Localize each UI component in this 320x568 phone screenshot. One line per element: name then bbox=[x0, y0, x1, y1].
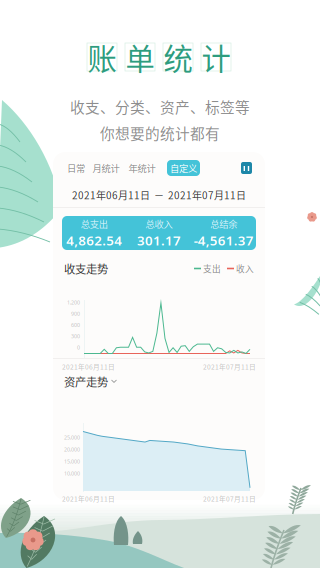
staticText: 年统计 bbox=[128, 161, 155, 175]
staticText: 0 bbox=[77, 344, 80, 351]
staticText: 2021年06月11日 bbox=[62, 494, 115, 503]
staticText: 账 bbox=[87, 36, 116, 78]
staticText: 4,862.54 bbox=[66, 231, 122, 249]
staticText: 计 bbox=[201, 36, 230, 78]
button[interactable]: 自定义 bbox=[167, 160, 200, 176]
staticText: 2021年06月11日 bbox=[62, 362, 115, 371]
staticText: 2021年07月11日 bbox=[203, 494, 256, 503]
staticText: 单 bbox=[125, 36, 154, 78]
staticText: 15,000 bbox=[64, 458, 80, 465]
staticText: 收入 bbox=[236, 262, 254, 275]
button[interactable]: 日常 bbox=[65, 162, 87, 174]
button[interactable]: Calendar bbox=[241, 162, 252, 174]
staticText: 总支出 bbox=[81, 217, 108, 230]
staticText: 月统计 bbox=[92, 161, 119, 175]
staticText: 你想要的统计都有 bbox=[100, 122, 220, 143]
staticText: 日常 bbox=[67, 161, 85, 175]
staticText: 统 bbox=[163, 36, 192, 78]
staticText: 支出 bbox=[203, 262, 221, 275]
staticText: 10,000 bbox=[64, 470, 80, 477]
staticText: 1,200 bbox=[67, 299, 80, 306]
staticText: 2021年07月11日 bbox=[203, 362, 256, 371]
staticText: 301.17 bbox=[137, 231, 181, 249]
staticText: 收支、分类、资产、标签等 bbox=[70, 96, 250, 117]
staticText: 25,000 bbox=[64, 434, 80, 441]
staticText: 20,000 bbox=[64, 446, 80, 453]
staticText: 总结余 bbox=[210, 217, 237, 230]
staticText: 2021年06月11日 － 2021年07月11日 bbox=[72, 188, 246, 202]
staticText: 总收入 bbox=[145, 217, 172, 230]
button[interactable]: 年统计 bbox=[131, 162, 153, 174]
staticText: 600 bbox=[71, 321, 80, 329]
staticText: 自定义 bbox=[170, 161, 197, 175]
staticText: 收支走势 bbox=[64, 260, 108, 277]
staticText: 900 bbox=[71, 310, 80, 317]
staticText: 资产走势 bbox=[64, 373, 108, 390]
staticText: -4,561.37 bbox=[194, 231, 254, 249]
staticText: 300 bbox=[71, 333, 80, 340]
button[interactable]: 月统计 bbox=[95, 162, 117, 174]
